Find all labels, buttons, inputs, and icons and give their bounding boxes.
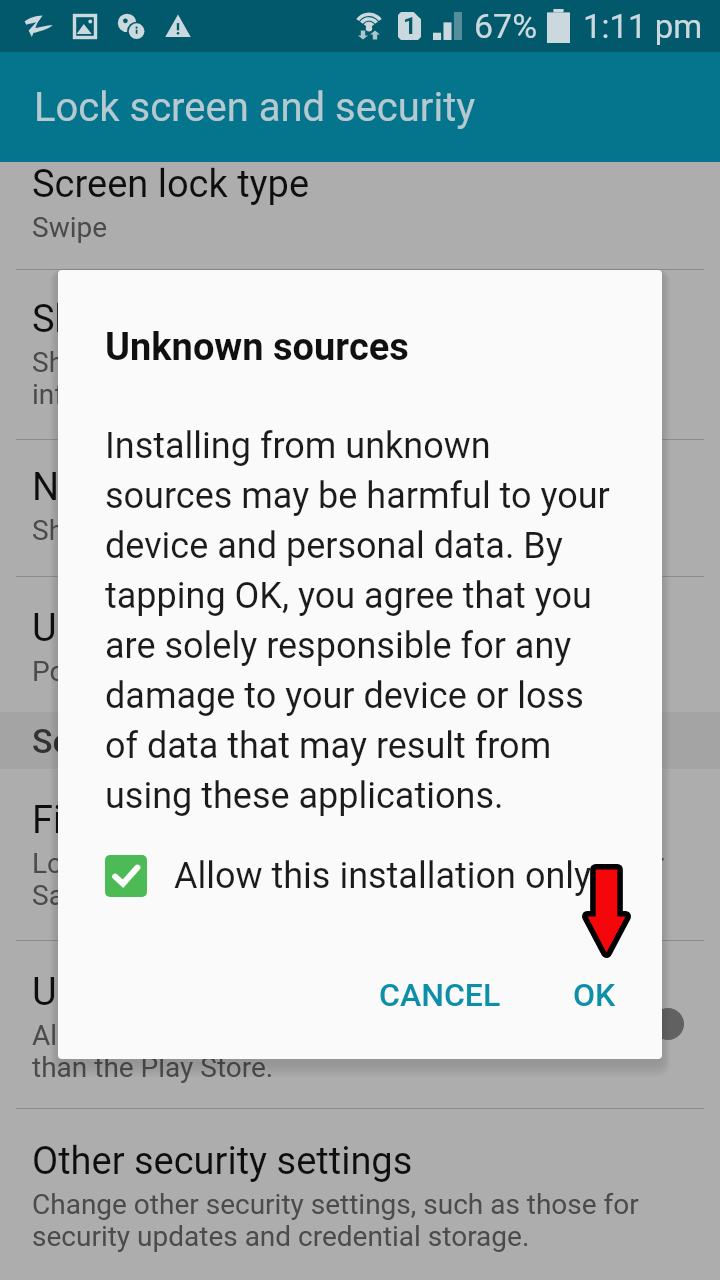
staticText: 1 [403, 12, 417, 40]
staticText: Change other security settings, such as … [32, 1189, 639, 1253]
staticText: Unknown sources [32, 606, 333, 650]
staticText: Unknown sources [32, 970, 333, 1014]
staticText: 1:11 pm [583, 7, 703, 46]
staticText: Show content [32, 515, 203, 547]
button[interactable]: Other security settings [0, 1108, 720, 1280]
staticText: Installing from unknown sources may be h… [105, 418, 617, 818]
button[interactable]: Unknown sources [0, 576, 720, 712]
staticText: Swipe [32, 212, 108, 244]
staticText: Find My Mobile [32, 798, 290, 842]
button[interactable]: Show information [0, 269, 720, 439]
button[interactable]: Notifications [0, 439, 720, 576]
button[interactable]: OK [557, 960, 632, 1030]
staticText: Notifications [32, 465, 249, 509]
staticText: 67% [474, 6, 538, 46]
staticText: CANCEL [379, 976, 501, 1014]
staticText: Locate and control your device remotely … [32, 848, 665, 912]
staticText: OK [573, 976, 616, 1014]
staticText: Lock screen and security [34, 84, 476, 131]
staticText: Screen lock type [32, 162, 310, 206]
staticText: Security [32, 721, 157, 761]
staticText: Allow this installation only [174, 855, 592, 897]
button[interactable]: Allow this installation only [101, 851, 592, 901]
staticText: Show owner information and information o… [32, 347, 390, 411]
staticText: Other security settings [32, 1139, 413, 1183]
button[interactable]: Screen lock type [0, 134, 720, 271]
button[interactable]: Unknown sources [0, 940, 720, 1108]
button[interactable]: CANCEL [363, 960, 517, 1030]
staticText: Power [32, 656, 111, 688]
button[interactable]: Find My Mobile [0, 769, 720, 940]
staticText: Allow apps to be installed from sources … [32, 1020, 595, 1084]
other: Tap OK [581, 863, 632, 959]
staticText: Unknown sources [105, 325, 409, 369]
staticText: Show information [32, 297, 332, 341]
